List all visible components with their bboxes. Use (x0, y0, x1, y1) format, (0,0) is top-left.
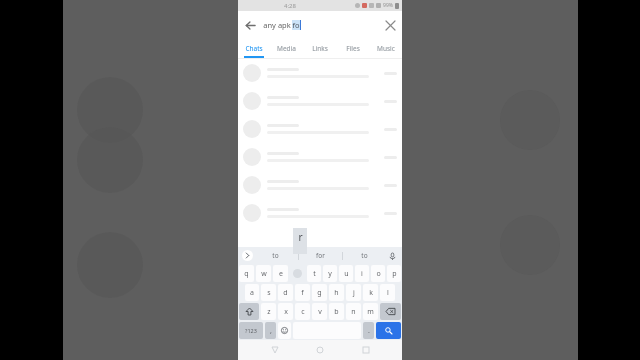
button[interactable]: Files (336, 38, 369, 58)
staticText: n (351, 307, 356, 317)
staticText: 99% (383, 2, 393, 9)
button[interactable]: Links (303, 38, 336, 58)
button[interactable]: f (295, 284, 310, 301)
button[interactable]: Chats (238, 38, 270, 58)
staticText: to (361, 251, 368, 260)
staticText: fo (292, 20, 300, 30)
staticText: t (313, 269, 316, 279)
button[interactable]: k (363, 284, 378, 301)
button[interactable]: d (278, 284, 293, 301)
staticText: i (361, 269, 363, 279)
button[interactable]: More suggestions (242, 250, 253, 261)
button[interactable]: Emoji (278, 322, 291, 339)
button[interactable]: Symbols (239, 322, 263, 339)
button[interactable]: c (295, 303, 310, 320)
staticText: Music (377, 44, 395, 53)
staticText: to (272, 251, 279, 260)
staticText: for (316, 251, 325, 260)
staticText: y (328, 269, 332, 279)
button[interactable]: Back (266, 341, 284, 359)
button[interactable]: Back (238, 13, 262, 37)
staticText: Media (277, 44, 296, 53)
button[interactable]: x (278, 303, 293, 320)
button[interactable]: for (298, 247, 342, 264)
staticText: Files (346, 44, 360, 53)
staticText: l (387, 288, 389, 298)
staticText: j (353, 288, 355, 298)
staticText: , (270, 326, 272, 336)
staticText: ?123 (245, 327, 257, 334)
staticText: any apk (262, 20, 292, 30)
button[interactable]: t (307, 265, 321, 282)
staticText: h (334, 288, 339, 298)
button[interactable]: h (329, 284, 344, 301)
button[interactable]: b (329, 303, 344, 320)
button[interactable]: Comma (265, 322, 276, 339)
staticText: w (261, 269, 267, 279)
button[interactable]: Shift (239, 303, 259, 320)
staticText: q (244, 269, 249, 279)
staticText: s (267, 288, 271, 298)
button[interactable]: i (355, 265, 369, 282)
button[interactable]: e (273, 265, 288, 282)
staticText: 4:28 (284, 2, 296, 10)
button[interactable]: l (380, 284, 395, 301)
staticText: Links (312, 44, 328, 53)
button[interactable]: g (312, 284, 327, 301)
button[interactable]: to (253, 247, 298, 264)
staticText: o (376, 269, 381, 279)
staticText: . (368, 326, 370, 336)
staticText: Chats (245, 44, 263, 53)
button[interactable]: u (339, 265, 353, 282)
staticText: a (250, 288, 254, 298)
staticText: r (298, 230, 303, 244)
button[interactable]: s (261, 284, 276, 301)
button[interactable]: a (245, 284, 259, 301)
staticText: c (301, 307, 305, 317)
button[interactable]: Music (369, 38, 402, 58)
button[interactable] (289, 264, 306, 283)
button[interactable]: m (363, 303, 378, 320)
staticText: p (392, 269, 397, 279)
staticText: v (318, 307, 322, 317)
button[interactable]: v (312, 303, 327, 320)
button[interactable]: y (323, 265, 337, 282)
staticText: x (284, 307, 288, 317)
staticText: z (267, 307, 271, 317)
button[interactable]: Backspace (380, 303, 401, 320)
button[interactable]: Clear search (378, 13, 402, 37)
staticText: e (279, 269, 283, 279)
button[interactable]: z (261, 303, 276, 320)
button[interactable]: w (256, 265, 271, 282)
staticText: b (334, 307, 339, 317)
staticText: d (283, 288, 288, 298)
button[interactable]: Recents (357, 341, 375, 359)
button[interactable]: n (346, 303, 361, 320)
button[interactable]: p (387, 265, 401, 282)
button[interactable]: Media (270, 38, 303, 58)
button[interactable]: Home (311, 341, 329, 359)
button[interactable]: Voice input (386, 250, 398, 262)
staticText: g (317, 288, 322, 298)
button[interactable]: Search (376, 322, 401, 339)
button[interactable]: to (342, 247, 386, 264)
staticText: f (301, 288, 304, 298)
button[interactable]: j (346, 284, 361, 301)
staticText: k (369, 288, 373, 298)
button[interactable]: o (371, 265, 385, 282)
staticText: u (344, 269, 349, 279)
button[interactable]: q (239, 265, 254, 282)
staticText: m (367, 307, 374, 317)
button[interactable]: Period (363, 322, 374, 339)
